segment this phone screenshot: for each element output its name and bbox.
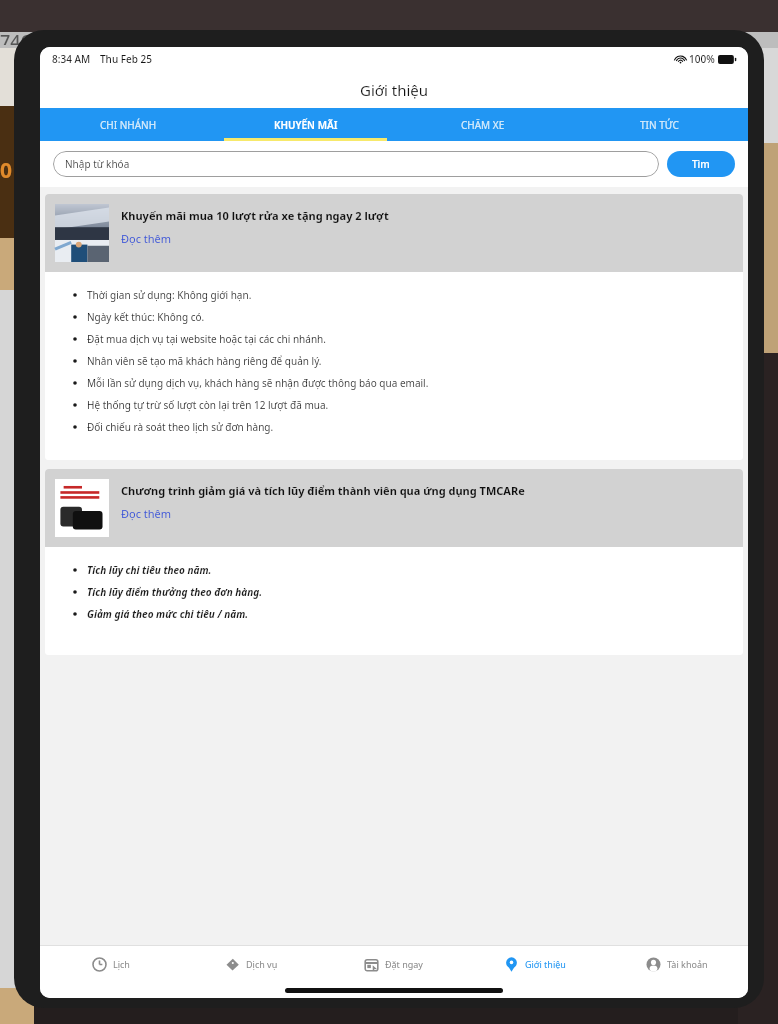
button[interactable]: Đặt ngay: [322, 946, 464, 982]
staticText: Tích lũy chi tiêu theo năm.: [87, 563, 212, 577]
staticText: 100%: [689, 52, 715, 66]
staticText: Khuyến mãi mua 10 lượt rửa xe tặng ngay …: [121, 208, 389, 223]
button[interactable]: Nhập từ khóa: [53, 151, 659, 177]
staticText: Đối chiếu rà soát theo lịch sử đơn hàng.: [87, 420, 274, 434]
staticText: Nhập từ khóa: [65, 157, 130, 171]
staticText: Giảm giá theo mức chi tiêu / năm.: [87, 607, 249, 621]
staticText: Đặt mua dịch vụ tại website hoặc tại các…: [87, 332, 326, 346]
button[interactable]: KHUYẾN MÃI: [217, 108, 394, 141]
staticText: Hệ thống tự trừ số lượt còn lại trên 12 …: [87, 398, 329, 412]
button[interactable]: Đọc thêm: [121, 506, 172, 521]
staticText: CHĂM XE: [461, 118, 505, 132]
staticText: 8:34 AM: [52, 52, 91, 66]
staticText: 0: [0, 156, 13, 185]
staticText: Ngày kết thúc: Không có.: [87, 310, 205, 324]
staticText: Tài khoản: [667, 958, 708, 970]
button[interactable]: Tìm: [667, 151, 735, 177]
button[interactable]: Giới thiệu: [464, 946, 606, 982]
staticText: Giới thiệu: [360, 80, 429, 100]
staticText: Dịch vụ: [246, 958, 278, 970]
button[interactable]: Đọc thêm: [121, 231, 172, 246]
button[interactable]: TIN TỨC: [571, 108, 748, 141]
staticText: Giới thiệu: [525, 958, 566, 970]
staticText: TIN TỨC: [640, 118, 679, 132]
button[interactable]: CHĂM XE: [394, 108, 571, 141]
staticText: Tích lũy điểm thưởng theo đơn hàng.: [87, 585, 263, 599]
staticText: Đặt ngay: [385, 958, 423, 970]
button[interactable]: Chương trình giảm giá và tích lũy điểm t…: [45, 469, 743, 547]
staticText: Tìm: [692, 157, 710, 171]
staticText: Nhân viên sẽ tạo mã khách hàng riêng để …: [87, 354, 322, 368]
button[interactable]: Tài khoản: [606, 946, 748, 982]
staticText: Thu Feb 25: [100, 52, 153, 66]
button[interactable]: CHI NHÁNH: [40, 108, 217, 141]
staticText: 746871/page-2#post-58070276: [0, 29, 266, 45]
button[interactable]: Khuyến mãi mua 10 lượt rửa xe tặng ngay …: [45, 194, 743, 272]
staticText: Chương trình giảm giá và tích lũy điểm t…: [121, 483, 525, 498]
button[interactable]: Dịch vụ: [181, 946, 322, 982]
button[interactable]: Lịch: [40, 946, 181, 982]
staticText: Thời gian sử dụng: Không giới hạn.: [87, 288, 252, 302]
staticText: CHI NHÁNH: [100, 118, 157, 132]
staticText: KHUYẾN MÃI: [274, 118, 338, 132]
staticText: Mỗi lần sử dụng dịch vụ, khách hàng sẽ n…: [87, 376, 429, 390]
staticText: Lịch: [113, 958, 130, 970]
